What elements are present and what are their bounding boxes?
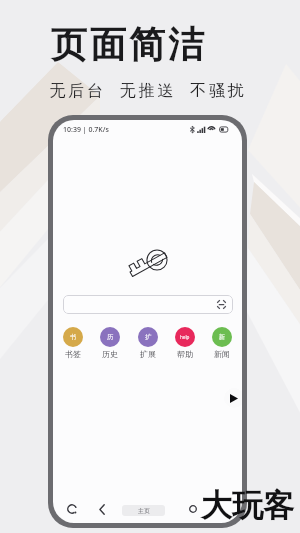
staticText: help [180, 334, 190, 340]
staticText: 书 [70, 333, 77, 341]
button[interactable]: Forward [224, 388, 242, 408]
staticText: 历 [107, 333, 114, 341]
staticText: 无后台 无推送 不骚扰 [0, 79, 298, 101]
staticText: 新 [219, 333, 226, 341]
staticText: 扩展 [140, 349, 156, 359]
staticText: 10:39 | 0.7K/s [63, 125, 109, 135]
staticText: 历史 [102, 349, 118, 359]
staticText: 帮助 [177, 349, 193, 359]
button[interactable]: Back [93, 500, 111, 518]
button[interactable]: Tabs [184, 500, 202, 518]
staticText: 书签 [65, 349, 81, 359]
staticText: 扩 [145, 333, 152, 341]
button[interactable]: 扩 [138, 327, 158, 359]
button[interactable]: 历 [100, 327, 120, 359]
button[interactable]: Scan code [63, 295, 233, 314]
staticText: 页面简洁 [0, 22, 279, 67]
button[interactable]: 新 [212, 327, 232, 359]
button[interactable]: 主页 [122, 505, 165, 516]
button[interactable]: Refresh [63, 500, 81, 518]
staticText: 大玩客 [201, 486, 294, 525]
button[interactable]: help [175, 327, 195, 359]
other: Scan code [216, 299, 227, 310]
button[interactable]: 书 [63, 327, 83, 359]
staticText: 新闻 [214, 349, 230, 359]
staticText: 主页 [138, 507, 150, 515]
